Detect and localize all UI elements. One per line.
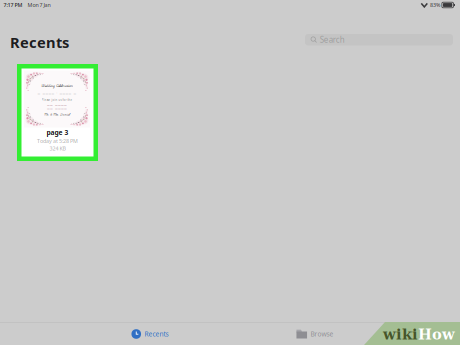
staticText: —— ———— [47, 107, 67, 110]
staticText: Wedding Celebration [41, 83, 73, 88]
button[interactable]: Recents [80, 323, 220, 345]
button[interactable]: Search [305, 34, 453, 45]
staticText: wiki [383, 326, 418, 343]
staticText: Today at 5:28 PM [37, 137, 78, 145]
staticText: Mr. & Mrs. Daniel [44, 112, 70, 117]
staticText: How [418, 326, 455, 343]
staticText: Recents [10, 32, 69, 52]
staticText: 83% [430, 1, 440, 9]
staticText: Please join us for the [41, 98, 72, 102]
staticText: Recents [144, 330, 168, 338]
staticText: Mon 7 Jan [27, 1, 50, 9]
staticText: — ———— · ———— — [37, 92, 76, 95]
staticText: Browse [311, 330, 334, 338]
button[interactable]: Wedding Celebration [17, 64, 98, 161]
staticText: 7:17 PM [3, 1, 22, 9]
staticText: —— ———— [47, 103, 67, 107]
button[interactable]: Browse [245, 323, 385, 345]
staticText: 324 KB [49, 145, 65, 152]
staticText: page 3 [46, 128, 68, 137]
staticText: Search [320, 34, 345, 45]
